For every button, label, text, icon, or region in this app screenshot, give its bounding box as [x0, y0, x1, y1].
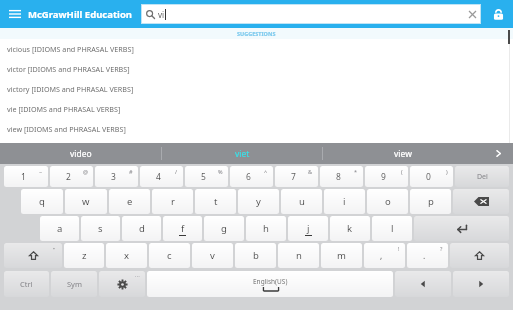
button[interactable]: Settings	[99, 271, 145, 297]
button[interactable]: Del	[455, 166, 509, 187]
button[interactable]: Backspace	[453, 189, 509, 214]
staticText: (	[401, 168, 403, 175]
button[interactable]: Move cursor left	[395, 271, 451, 297]
button[interactable]: b	[235, 243, 276, 268]
button[interactable]: m	[321, 243, 362, 268]
staticText: n	[296, 249, 302, 262]
button[interactable]: .	[407, 243, 448, 268]
staticText: 3	[111, 171, 116, 183]
button[interactable]: 4	[140, 166, 183, 187]
staticText: English(US)	[253, 277, 288, 286]
button[interactable]: view [IDIOMS and PHRASAL VERBS]	[0, 119, 513, 139]
staticText: •	[53, 246, 55, 253]
button[interactable]: 8	[320, 166, 363, 187]
staticText: Ctrl	[20, 279, 33, 289]
button[interactable]: Sym	[51, 271, 97, 297]
button[interactable]: video	[0, 143, 161, 164]
staticText: %	[218, 168, 223, 175]
staticText: victory [IDIOMS and PHRASAL VERBS]	[7, 84, 134, 94]
staticText: /	[175, 168, 178, 175]
button[interactable]: 5	[185, 166, 228, 187]
other: Settings	[99, 271, 145, 297]
button[interactable]: p	[410, 189, 451, 214]
button[interactable]: g	[204, 216, 244, 241]
button[interactable]: x	[106, 243, 147, 268]
button[interactable]: victor [IDIOMS and PHRASAL VERBS]	[0, 59, 513, 79]
button[interactable]: More suggestions	[483, 143, 513, 164]
staticText: f	[181, 222, 185, 235]
button[interactable]: ,	[364, 243, 405, 268]
staticText: ~	[39, 168, 43, 175]
button[interactable]: w	[65, 189, 107, 214]
button[interactable]: viet	[162, 143, 322, 164]
button[interactable]: d	[122, 216, 161, 241]
button[interactable]: victory [IDIOMS and PHRASAL VERBS]	[0, 79, 513, 99]
staticText: ?	[440, 245, 443, 252]
staticText: z	[82, 249, 87, 262]
staticText: s	[98, 222, 103, 235]
button[interactable]: c	[149, 243, 190, 268]
button[interactable]: Lock	[488, 4, 508, 24]
button[interactable]: Enter	[414, 216, 509, 241]
button[interactable]: h	[246, 216, 286, 241]
button[interactable]: a	[40, 216, 79, 241]
button[interactable]: English(US)	[147, 271, 393, 297]
button[interactable]: f	[163, 216, 202, 241]
button[interactable]: vi	[141, 4, 481, 24]
button[interactable]: y	[238, 189, 279, 214]
button[interactable]: i	[324, 189, 365, 214]
button[interactable]: o	[367, 189, 408, 214]
staticText: v	[210, 249, 215, 262]
button[interactable]: Shift	[4, 243, 62, 268]
button[interactable]: e	[109, 189, 150, 214]
staticText: h	[263, 222, 269, 235]
button[interactable]: Ctrl	[4, 271, 49, 297]
staticText: #	[129, 168, 133, 175]
staticText: victor [IDIOMS and PHRASAL VERBS]	[7, 64, 130, 74]
staticText: @	[83, 168, 88, 175]
button[interactable]: 1	[4, 166, 48, 187]
button[interactable]: 0	[410, 166, 453, 187]
staticText: 9	[381, 171, 386, 183]
staticText: vie [IDIOMS and PHRASAL VERBS]	[7, 104, 121, 114]
staticText: vicious [IDIOMS and PHRASAL VERBS]	[7, 44, 134, 54]
button[interactable]: Menu	[5, 4, 25, 24]
button[interactable]: r	[152, 189, 193, 214]
button[interactable]: 7	[275, 166, 318, 187]
button[interactable]: 2	[50, 166, 93, 187]
staticText: 4	[156, 171, 161, 183]
button[interactable]: z	[64, 243, 104, 268]
button[interactable]: vicious [IDIOMS and PHRASAL VERBS]	[0, 39, 513, 59]
button[interactable]: Shift	[450, 243, 509, 268]
staticText: r	[171, 195, 175, 208]
staticText: k	[347, 222, 353, 235]
button[interactable]: n	[278, 243, 319, 268]
button[interactable]: k	[330, 216, 370, 241]
button[interactable]: Clear search	[466, 8, 478, 20]
staticText: video	[70, 148, 92, 160]
button[interactable]: t	[195, 189, 236, 214]
button[interactable]: 9	[365, 166, 408, 187]
button[interactable]: vie [IDIOMS and PHRASAL VERBS]	[0, 99, 513, 119]
staticText: Del	[477, 172, 488, 182]
button[interactable]: q	[21, 189, 63, 214]
staticText: 1	[21, 171, 26, 183]
staticText: vi	[158, 9, 165, 20]
staticText: y	[256, 195, 261, 208]
staticText: ,	[380, 250, 383, 262]
button[interactable]: 3	[95, 166, 138, 187]
button[interactable]: v	[192, 243, 233, 268]
button[interactable]: view	[323, 143, 483, 164]
staticText: a	[57, 222, 63, 235]
button[interactable]: l	[372, 216, 412, 241]
button[interactable]: 6	[230, 166, 273, 187]
staticText: x	[124, 249, 130, 262]
button[interactable]: Move cursor right	[453, 271, 509, 297]
button[interactable]: u	[281, 189, 322, 214]
staticText: Sym	[67, 279, 82, 289]
button[interactable]: j	[288, 216, 328, 241]
staticText: 6	[246, 171, 251, 183]
staticText: i	[343, 195, 346, 208]
staticText: 0	[426, 171, 431, 183]
button[interactable]: s	[81, 216, 120, 241]
